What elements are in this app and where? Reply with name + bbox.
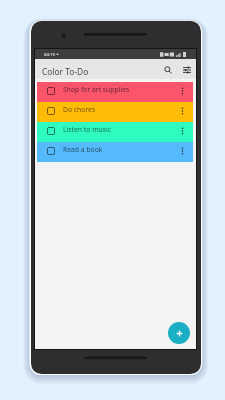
button[interactable]: Do chores bbox=[37, 102, 193, 122]
staticText: Read a book bbox=[63, 145, 103, 154]
staticText: Listen to music bbox=[63, 125, 111, 134]
button[interactable]: Listen to music bbox=[37, 122, 193, 142]
button[interactable]: More options bbox=[176, 145, 188, 157]
button[interactable]: More options bbox=[176, 85, 188, 97]
button[interactable]: Shop for art supplies bbox=[37, 82, 193, 102]
staticText: Do chores bbox=[63, 105, 96, 114]
staticText: 04:19 bbox=[44, 51, 55, 57]
button[interactable]: Sort and filter bbox=[178, 61, 196, 79]
button[interactable]: More options bbox=[176, 105, 188, 117]
button[interactable]: Add task bbox=[168, 322, 190, 344]
staticText: Color To-Do bbox=[42, 66, 89, 77]
button[interactable]: Read a book bbox=[37, 142, 193, 162]
button[interactable]: More options bbox=[176, 125, 188, 137]
button[interactable]: Search bbox=[159, 61, 177, 79]
staticText: Shop for art supplies bbox=[63, 85, 130, 94]
